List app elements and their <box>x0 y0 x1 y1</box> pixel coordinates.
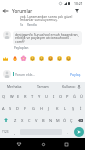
staticText: D <box>16 106 19 111</box>
button[interactable]: Yorum ekle... <box>13 69 69 79</box>
button[interactable]: Backspace <box>75 114 85 126</box>
staticText: L <box>64 106 67 111</box>
button[interactable]: Home <box>38 139 48 149</box>
staticText: M <box>56 118 60 123</box>
button[interactable]: Paylaşılan <box>14 46 29 50</box>
staticText: I <box>53 94 55 99</box>
button[interactable]: Tamam <box>29 82 57 90</box>
staticText: Merhaba <box>7 84 22 89</box>
button[interactable]: Emoji <box>19 54 28 63</box>
staticText: Ğ <box>73 94 76 99</box>
button[interactable]: N <box>47 114 54 126</box>
button[interactable]: Paylaş <box>69 72 82 77</box>
button[interactable]: X <box>19 114 26 126</box>
staticText: U <box>45 94 48 99</box>
staticText: S <box>9 106 12 111</box>
button[interactable]: O <box>57 90 64 102</box>
button[interactable]: Filter <box>73 7 81 14</box>
staticText: Ç <box>70 118 73 123</box>
button[interactable]: Profile <box>3 70 11 78</box>
staticText: İ <box>80 106 82 111</box>
staticText: K <box>56 106 59 111</box>
staticText: W <box>10 94 14 99</box>
staticText: N <box>49 118 53 123</box>
staticText: Z <box>14 118 17 123</box>
staticText: Yanıtla <box>27 23 37 27</box>
button[interactable]: W <box>8 90 15 102</box>
button[interactable]: Ğ <box>71 90 78 102</box>
staticText: T <box>31 94 34 99</box>
button[interactable]: Profile <box>3 31 11 39</box>
button[interactable]: Emoji <box>55 54 64 63</box>
button[interactable]: P <box>64 90 71 102</box>
staticText: H <box>40 106 43 111</box>
button[interactable]: Z <box>11 114 19 126</box>
staticText: 5s <box>20 23 24 27</box>
button[interactable]: Emoji <box>28 54 37 63</box>
button[interactable]: Ü <box>78 90 85 102</box>
staticText: Q <box>2 94 6 99</box>
button[interactable]: Emoji <box>10 54 19 63</box>
staticText: destiqwnfo Sunushod emuh hazandran, etki… <box>15 32 79 44</box>
staticText: Tamam <box>37 84 49 89</box>
button[interactable]: ?123 <box>0 126 11 138</box>
button[interactable]: Ö <box>61 114 68 126</box>
button[interactable]: Emoji <box>64 54 73 63</box>
button[interactable]: M <box>54 114 61 126</box>
staticText: Yorumlar <box>12 8 33 14</box>
staticText: X <box>21 118 24 123</box>
staticText: C <box>28 118 31 123</box>
staticText: Ş <box>72 106 75 111</box>
staticText: P <box>66 94 69 99</box>
button[interactable]: G <box>29 102 37 114</box>
button[interactable]: Q <box>0 90 8 102</box>
button[interactable]: I <box>50 90 57 102</box>
button[interactable]: K <box>53 102 61 114</box>
button[interactable]: U <box>43 90 50 102</box>
staticText: V <box>35 118 38 123</box>
button[interactable]: destiqwnfo Sunushod emuh hazandran, etki… <box>13 31 82 45</box>
staticText: Yorum ekle... <box>15 72 36 76</box>
staticText: ?123 <box>2 130 9 134</box>
button[interactable]: R <box>22 90 29 102</box>
staticText: Ö <box>63 118 67 123</box>
button[interactable]: D <box>14 102 21 114</box>
button[interactable]: Recents <box>61 139 71 149</box>
button[interactable]: H <box>37 102 45 114</box>
button[interactable]: J <box>45 102 53 114</box>
button[interactable]: Back <box>1 7 10 14</box>
button[interactable]: Ç <box>68 114 75 126</box>
staticText: A <box>2 106 5 111</box>
button[interactable]: C <box>26 114 33 126</box>
button[interactable]: T <box>29 90 36 102</box>
staticText: B <box>42 118 45 123</box>
button[interactable]: Shift <box>0 114 11 126</box>
staticText: , <box>14 130 16 135</box>
button[interactable]: S <box>7 102 14 114</box>
staticText: Y <box>38 94 41 99</box>
button[interactable]: V <box>33 114 40 126</box>
button[interactable]: Merhaba <box>0 82 29 90</box>
button[interactable]: Emoji <box>46 54 55 63</box>
button[interactable]: Kullanıcı <box>57 82 85 90</box>
button[interactable]: Back <box>14 139 24 149</box>
button[interactable]: Ş <box>69 102 77 114</box>
button[interactable]: Y <box>36 90 43 102</box>
staticText: E <box>17 94 20 99</box>
staticText: . <box>67 130 69 135</box>
staticText: F <box>24 106 27 111</box>
button[interactable]: Yanıtla <box>27 23 37 27</box>
button[interactable]: B <box>40 114 47 126</box>
button[interactable]: E <box>15 90 22 102</box>
button[interactable]: F <box>21 102 29 114</box>
button[interactable]: L <box>61 102 69 114</box>
button[interactable]: A <box>0 102 7 114</box>
button[interactable]: , <box>11 126 19 138</box>
button[interactable]: Send <box>74 127 84 137</box>
staticText: yok. Lansmandan sonra çok güzel imkanlar… <box>20 14 73 22</box>
button[interactable]: Emoji <box>37 54 46 63</box>
button[interactable]: Emoji <box>1 54 10 63</box>
button[interactable]: İ <box>77 102 85 114</box>
